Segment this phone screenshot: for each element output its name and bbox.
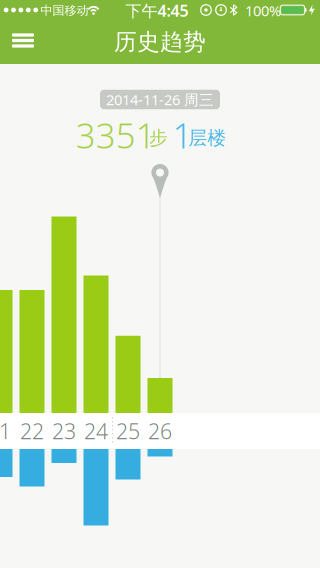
staticText: 100%	[245, 1, 281, 20]
staticText: 24	[84, 417, 108, 445]
staticText: 层楼	[188, 126, 226, 149]
staticText: 2014-11-26 周三	[106, 90, 214, 109]
staticText: 1	[172, 112, 192, 158]
staticText: 26	[148, 417, 172, 445]
button[interactable]: Day 23	[51, 216, 76, 413]
button[interactable]: 2014-11-26 周三	[100, 90, 220, 109]
staticText: 历史趋势	[114, 28, 206, 56]
staticText: 25	[116, 417, 140, 445]
staticText: 3351	[76, 112, 156, 158]
staticText: 22	[20, 417, 44, 445]
staticText: 中国移动	[40, 3, 88, 18]
staticText: 步	[149, 126, 168, 149]
button[interactable]: Menu	[6, 25, 40, 56]
staticText: 下午4:45	[125, 0, 188, 21]
staticText: 21	[0, 417, 11, 445]
staticText: 23	[52, 417, 76, 445]
